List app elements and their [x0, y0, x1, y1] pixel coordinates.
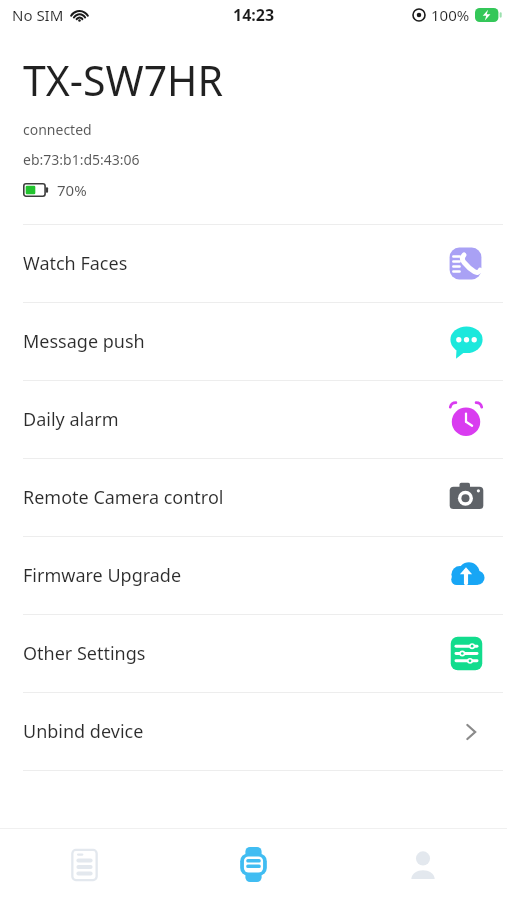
staticText: 14:23	[233, 4, 275, 26]
button[interactable]: Device	[169, 829, 338, 900]
staticText: Watch Faces	[23, 251, 128, 276]
staticText: No SIM	[12, 5, 64, 25]
button[interactable]: Unbind device	[0, 693, 507, 770]
staticText: Other Settings	[23, 641, 146, 666]
staticText: 70%	[57, 180, 87, 200]
staticText: Message push	[23, 329, 145, 354]
staticText: Unbind device	[23, 719, 144, 744]
button[interactable]: Watch Faces	[0, 225, 507, 302]
button[interactable]: Other Settings	[0, 615, 507, 692]
button[interactable]: Records	[0, 829, 169, 900]
staticText: 100%	[431, 5, 470, 25]
button[interactable]: Profile	[338, 829, 507, 900]
staticText: Remote Camera control	[23, 485, 224, 510]
staticText: eb:73:b1:d5:43:06	[23, 150, 140, 169]
staticText: connected	[23, 120, 92, 139]
button[interactable]: Remote Camera control	[0, 459, 507, 536]
button[interactable]: Daily alarm	[0, 381, 507, 458]
staticText: Daily alarm	[23, 407, 119, 432]
button[interactable]: Firmware Upgrade	[0, 537, 507, 614]
staticText: Firmware Upgrade	[23, 563, 182, 588]
staticText: TX-SW7HR	[23, 52, 223, 108]
button[interactable]: Message push	[0, 303, 507, 380]
